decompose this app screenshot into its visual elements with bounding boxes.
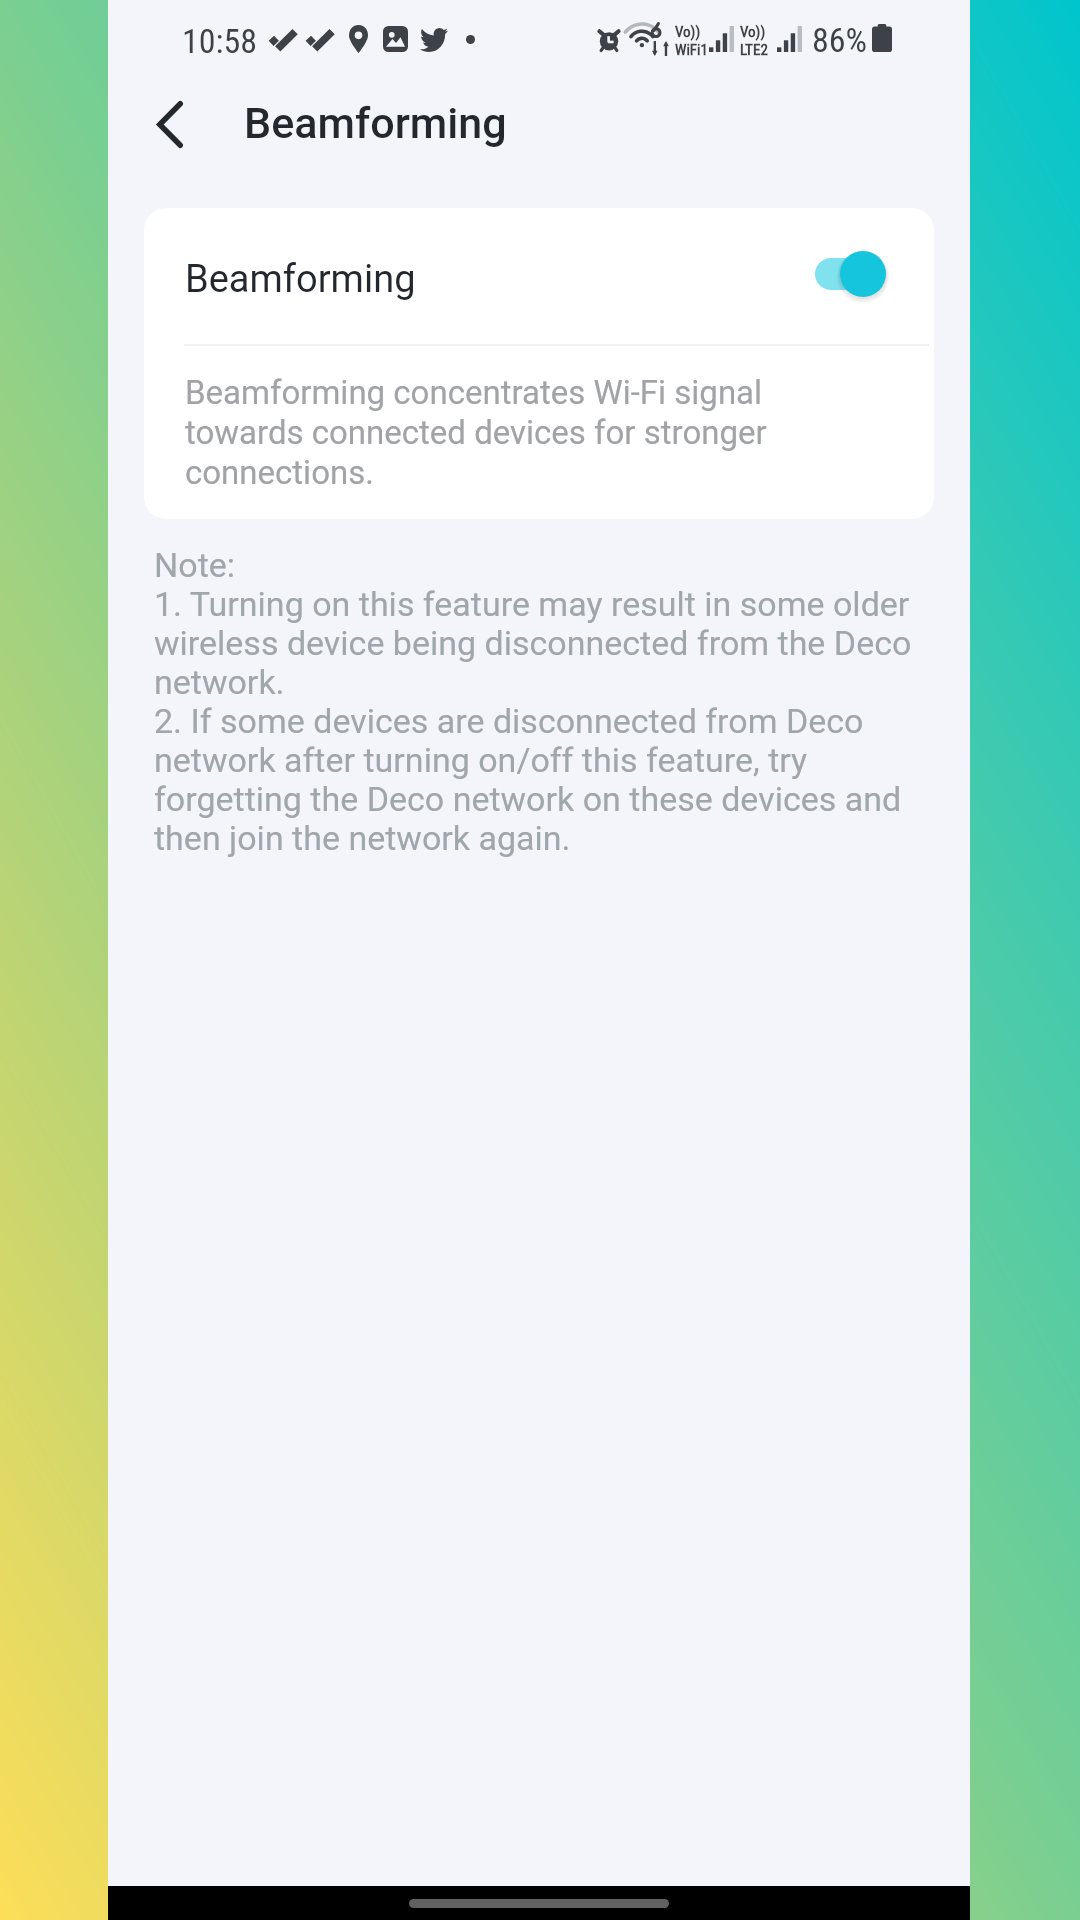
staticText: LTE2 (740, 41, 768, 59)
button[interactable]: Beamforming (144, 208, 934, 344)
staticText: Vo)) (740, 23, 766, 41)
staticText: Beamforming (185, 257, 416, 302)
staticText: WiFi1 (675, 41, 708, 59)
staticText: 86% (812, 20, 868, 60)
staticText: Beamforming (244, 98, 507, 148)
staticText: Note: 1. Turning on this feature may res… (154, 545, 930, 858)
staticText: Beamforming concentrates Wi-Fi signal to… (185, 373, 814, 492)
staticText: 10:58 (182, 21, 258, 61)
staticText: Vo)) (675, 23, 701, 41)
button[interactable]: Back (132, 86, 208, 162)
